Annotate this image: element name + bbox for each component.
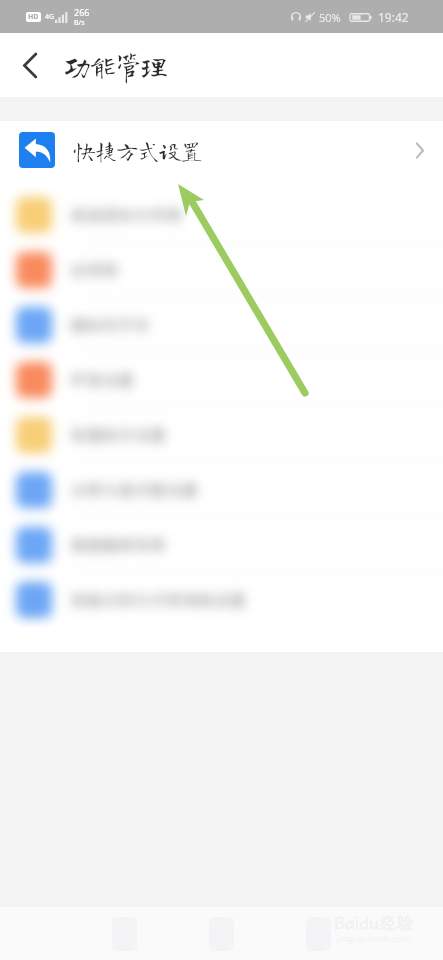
staticText: B/s — [74, 18, 85, 28]
button[interactable]: 分屏与悬浮窗设置 — [0, 462, 443, 517]
staticText: 桌面图标与布局 — [70, 204, 183, 225]
button[interactable]: Recents — [296, 911, 341, 956]
staticText: 声音设置 — [70, 369, 135, 390]
button[interactable]: 通知栏开关 — [0, 297, 443, 352]
staticText: 便捷截屏录屏 — [70, 534, 167, 555]
staticText: Baidu经验 — [334, 911, 414, 933]
staticText: 266 — [74, 6, 90, 18]
button[interactable]: 桌面图标与布局 — [0, 187, 443, 242]
button[interactable]: Home — [199, 911, 244, 956]
staticText: 19:42 — [378, 9, 409, 25]
staticText: 4G — [45, 12, 55, 22]
button[interactable]: 应用锁 — [0, 242, 443, 297]
button[interactable]: 声音设置 — [0, 352, 443, 407]
button[interactable]: Back — [102, 911, 147, 956]
staticText: 快捷方式设置 — [73, 139, 202, 162]
button[interactable]: 智慧助手设置 — [0, 407, 443, 462]
button[interactable]: 便捷截屏录屏 — [0, 517, 443, 572]
staticText: 功能管理 — [63, 51, 166, 80]
staticText: HD — [28, 12, 39, 22]
staticText: 50% — [319, 10, 341, 25]
staticText: 智能识别与手势导航设置 — [70, 589, 247, 610]
button[interactable]: 智能识别与手势导航设置 — [0, 572, 443, 627]
staticText: 应用锁 — [70, 259, 119, 280]
staticText: 智慧助手设置 — [70, 424, 167, 445]
staticText: 分屏与悬浮窗设置 — [70, 479, 199, 500]
button[interactable]: Back — [7, 42, 53, 88]
button[interactable]: 快捷方式设置 — [0, 121, 443, 179]
staticText: 通知栏开关 — [70, 314, 151, 335]
